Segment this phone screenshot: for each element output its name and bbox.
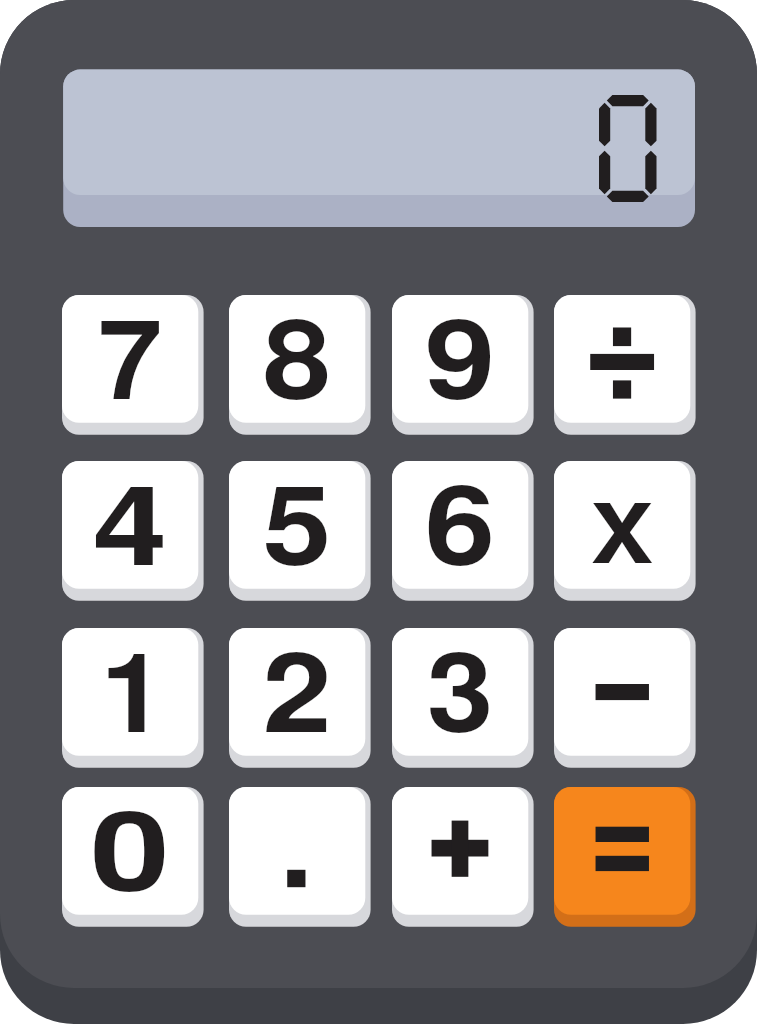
staticText: 6	[382, 441, 538, 569]
staticText: 0	[42, 767, 218, 895]
button[interactable]: Decimal point	[229, 787, 371, 927]
staticText: 5	[221, 441, 373, 569]
staticText: 2	[220, 608, 374, 736]
button[interactable]: Add	[392, 787, 534, 927]
button[interactable]: Subtract	[554, 628, 696, 768]
staticText: 8	[221, 275, 372, 403]
button[interactable]: 7	[62, 295, 204, 435]
staticText: 3	[386, 608, 534, 736]
button[interactable]: Divide	[554, 295, 696, 435]
button[interactable]: 3	[392, 628, 534, 768]
button[interactable]: Multiply	[554, 461, 696, 601]
staticText: 1	[61, 608, 205, 736]
button[interactable]: Equals	[554, 787, 696, 927]
button[interactable]: 2	[229, 628, 371, 768]
staticText: 9	[382, 275, 538, 403]
button[interactable]: 5	[229, 461, 371, 601]
staticText: 4	[47, 441, 213, 569]
button[interactable]: 9	[392, 295, 534, 435]
button[interactable]: 4	[62, 461, 204, 601]
staticText: 7	[59, 275, 201, 403]
staticText: X	[563, 470, 681, 566]
button[interactable]: 0	[62, 787, 204, 927]
button[interactable]: 1	[62, 628, 204, 768]
button[interactable]: 8	[229, 295, 371, 435]
button[interactable]: 6	[392, 461, 534, 601]
